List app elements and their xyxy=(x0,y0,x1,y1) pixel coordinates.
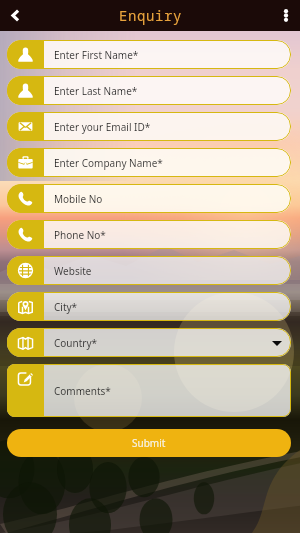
staticText: Submit xyxy=(132,436,166,450)
staticText: Website xyxy=(54,264,92,278)
staticText: Enter Company Name* xyxy=(54,156,163,170)
button[interactable]: Mobile No xyxy=(7,184,291,213)
staticText: Phone No* xyxy=(54,228,106,242)
staticText: Mobile No xyxy=(54,192,103,206)
button[interactable]: City* xyxy=(7,292,291,321)
button[interactable]: Enter First Name* xyxy=(7,40,291,69)
button[interactable]: Back xyxy=(0,0,30,31)
staticText: City* xyxy=(54,300,78,314)
button[interactable]: Website xyxy=(7,256,291,285)
button[interactable]: Enter your Email ID* xyxy=(7,112,291,141)
staticText: Enquiry xyxy=(119,6,182,25)
button[interactable]: Submit xyxy=(7,429,291,457)
button[interactable]: Enter Company Name* xyxy=(7,148,291,177)
staticText: Comments* xyxy=(54,384,111,398)
button[interactable]: More options xyxy=(271,0,300,31)
button[interactable]: Phone No* xyxy=(7,220,291,249)
staticText: Country* xyxy=(54,336,98,350)
button[interactable]: Enter Last Name* xyxy=(7,76,291,105)
button[interactable]: Comments* xyxy=(7,364,291,417)
staticText: Enter Last Name* xyxy=(54,84,138,98)
staticText: Enter your Email ID* xyxy=(54,120,151,134)
staticText: Enter First Name* xyxy=(54,48,139,62)
button[interactable]: Country* xyxy=(7,328,291,357)
